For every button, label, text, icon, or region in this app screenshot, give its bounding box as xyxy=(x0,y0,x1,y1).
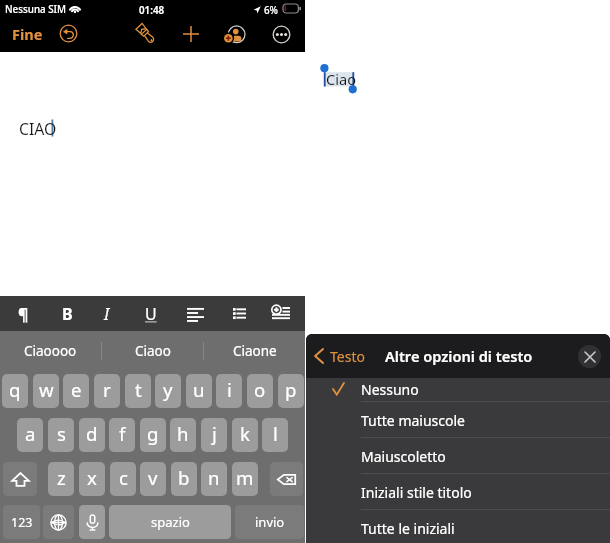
button[interactable]: Collaborate xyxy=(224,25,245,46)
button[interactable]: Bulleted list xyxy=(223,296,255,331)
staticText: i xyxy=(227,377,232,402)
button[interactable]: Insert list item xyxy=(265,296,297,331)
button[interactable]: h xyxy=(170,418,196,452)
staticText: Tutte maiuscole xyxy=(361,411,465,430)
staticText: U xyxy=(145,303,157,325)
button[interactable]: Underline xyxy=(135,296,167,331)
button[interactable]: Tutte maiuscole xyxy=(306,402,610,438)
button[interactable]: r xyxy=(94,374,120,408)
staticText: a xyxy=(25,421,36,446)
button[interactable]: p xyxy=(278,374,304,408)
staticText: c xyxy=(119,465,128,490)
staticText: w xyxy=(39,377,54,402)
button[interactable]: j xyxy=(201,418,227,452)
button[interactable]: c xyxy=(110,462,136,496)
staticText: I xyxy=(104,303,110,325)
button[interactable]: Tutte le iniziali xyxy=(306,510,610,543)
staticText: p xyxy=(285,377,297,402)
button[interactable]: invio xyxy=(235,505,304,539)
button[interactable]: Maiuscoletto xyxy=(306,438,610,474)
staticText: n xyxy=(208,465,220,490)
button[interactable]: a xyxy=(17,418,43,452)
button[interactable]: y xyxy=(155,374,181,408)
button[interactable]: Format brush xyxy=(134,23,157,46)
button[interactable]: o xyxy=(247,374,273,408)
button[interactable]: Next keyboard xyxy=(43,505,74,539)
staticText: Iniziali stile titolo xyxy=(361,483,472,502)
staticText: Maiuscoletto xyxy=(361,447,446,466)
staticText: spazio xyxy=(151,513,190,531)
staticText: Testo xyxy=(330,347,365,366)
button[interactable]: Testo xyxy=(312,334,367,378)
staticText: ¶ xyxy=(18,303,29,325)
staticText: d xyxy=(86,421,98,446)
button[interactable]: Iniziali stile titolo xyxy=(306,474,610,510)
staticText: f xyxy=(119,421,126,446)
staticText: b xyxy=(178,465,190,490)
staticText: r xyxy=(103,377,111,402)
staticText: Ciaone xyxy=(233,342,277,360)
staticText: Nessuno xyxy=(361,380,419,399)
button[interactable]: Ciaoo xyxy=(102,331,203,370)
staticText: y xyxy=(163,377,173,402)
staticText: l xyxy=(273,421,278,446)
button[interactable]: k xyxy=(232,418,258,452)
staticText: Tutte le iniziali xyxy=(361,519,455,538)
staticText: 123 xyxy=(11,514,33,531)
staticText: u xyxy=(193,377,205,402)
button[interactable]: e xyxy=(63,374,89,408)
staticText: h xyxy=(177,421,189,446)
staticText: B xyxy=(62,303,73,325)
button[interactable]: i xyxy=(216,374,242,408)
button[interactable]: u xyxy=(186,374,212,408)
button[interactable]: Italic xyxy=(91,296,123,331)
button[interactable]: Fine xyxy=(8,18,47,50)
staticText: Ciaoo xyxy=(135,342,171,360)
button[interactable]: More xyxy=(273,26,290,43)
button[interactable]: g xyxy=(140,418,166,452)
button[interactable]: spazio xyxy=(109,505,231,539)
button[interactable]: d xyxy=(79,418,105,452)
staticText: v xyxy=(148,465,158,490)
button[interactable]: b xyxy=(171,462,197,496)
button[interactable]: w xyxy=(33,374,59,408)
button[interactable]: Insert xyxy=(183,26,199,42)
button[interactable]: Bold xyxy=(51,296,83,331)
button[interactable]: Dictation xyxy=(79,505,105,539)
staticText: invio xyxy=(255,513,285,531)
button[interactable]: f xyxy=(109,418,135,452)
button[interactable]: Paragraph style xyxy=(7,296,39,331)
button[interactable]: Close xyxy=(578,345,601,368)
button[interactable]: t xyxy=(125,374,151,408)
staticText: o xyxy=(254,377,266,402)
staticText: e xyxy=(71,377,82,402)
button[interactable]: s xyxy=(48,418,74,452)
button[interactable]: Backspace xyxy=(270,462,303,496)
staticText: t xyxy=(135,377,142,402)
button[interactable]: q xyxy=(2,374,28,408)
staticText: k xyxy=(240,421,250,446)
button[interactable]: Nessuno xyxy=(306,378,610,402)
staticText: s xyxy=(57,421,66,446)
button[interactable]: Shift xyxy=(3,462,37,496)
button[interactable]: l xyxy=(262,418,288,452)
button[interactable]: v xyxy=(140,462,166,496)
staticText: Ciao xyxy=(326,69,357,89)
button[interactable]: m xyxy=(232,462,258,496)
staticText: z xyxy=(57,465,66,490)
button[interactable]: 123 xyxy=(3,505,40,539)
staticText: Nessuna SIM xyxy=(5,3,67,16)
staticText: CIAO xyxy=(19,118,57,140)
button[interactable]: Align left xyxy=(179,296,211,331)
staticText: Fine xyxy=(12,24,43,44)
staticText: x xyxy=(87,465,97,490)
button[interactable]: n xyxy=(201,462,227,496)
button[interactable]: z xyxy=(48,462,74,496)
button[interactable]: Ciaoooo xyxy=(0,331,101,370)
button[interactable]: Ciaone xyxy=(204,331,305,370)
button[interactable]: Undo xyxy=(60,25,77,42)
button[interactable]: x xyxy=(79,462,105,496)
staticText: Ciaoooo xyxy=(24,342,77,360)
staticText: Altre opzioni di testo xyxy=(385,346,533,366)
staticText: m xyxy=(236,465,254,490)
